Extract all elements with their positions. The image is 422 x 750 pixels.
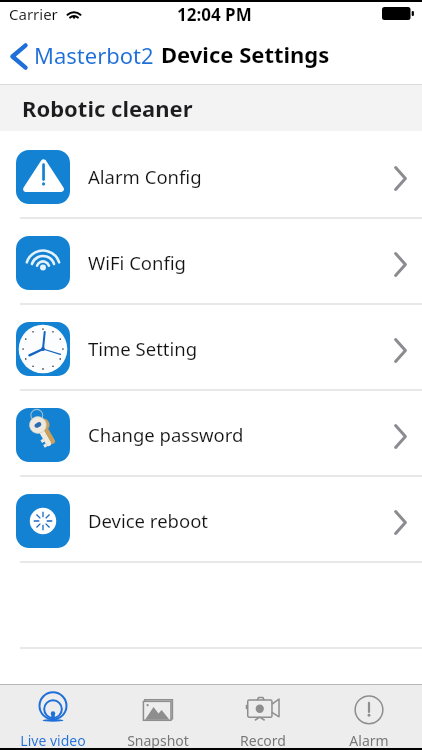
button[interactable]: Back to Masterbot2 bbox=[0, 36, 162, 78]
staticText: Alarm Config bbox=[88, 164, 202, 189]
staticText: Snapshot bbox=[127, 731, 189, 748]
staticText: Record bbox=[240, 731, 286, 748]
button[interactable]: Alarm Config bbox=[0, 131, 422, 217]
button[interactable]: Change password bbox=[0, 389, 422, 475]
staticText: Masterbot2 bbox=[34, 40, 154, 70]
button[interactable]: Record bbox=[210, 685, 316, 748]
button[interactable]: Snapshot bbox=[105, 685, 210, 748]
other: Back to Masterbot2 bbox=[10, 43, 28, 70]
other: Snapshot bbox=[140, 692, 176, 728]
button[interactable]: WiFi Config bbox=[0, 217, 422, 303]
button[interactable]: Alarm bbox=[316, 685, 422, 748]
staticText: Device reboot bbox=[88, 508, 209, 533]
button[interactable]: Live video bbox=[0, 685, 105, 748]
staticText: Change password bbox=[88, 422, 244, 447]
staticText: Carrier bbox=[9, 4, 58, 24]
staticText: WiFi Config bbox=[88, 250, 186, 275]
staticText: Alarm bbox=[349, 731, 389, 748]
other: Live video bbox=[35, 692, 71, 728]
other: Alarm bbox=[351, 692, 387, 728]
button[interactable]: Device reboot bbox=[0, 475, 422, 561]
staticText: 12:04 PM bbox=[177, 3, 252, 26]
staticText: Device Settings bbox=[161, 39, 330, 69]
button[interactable]: Time Setting bbox=[0, 303, 422, 389]
staticText: Time Setting bbox=[88, 336, 198, 361]
staticText: Live video bbox=[20, 731, 86, 748]
staticText: Robotic cleaner bbox=[22, 93, 193, 123]
other: Record bbox=[245, 692, 281, 728]
